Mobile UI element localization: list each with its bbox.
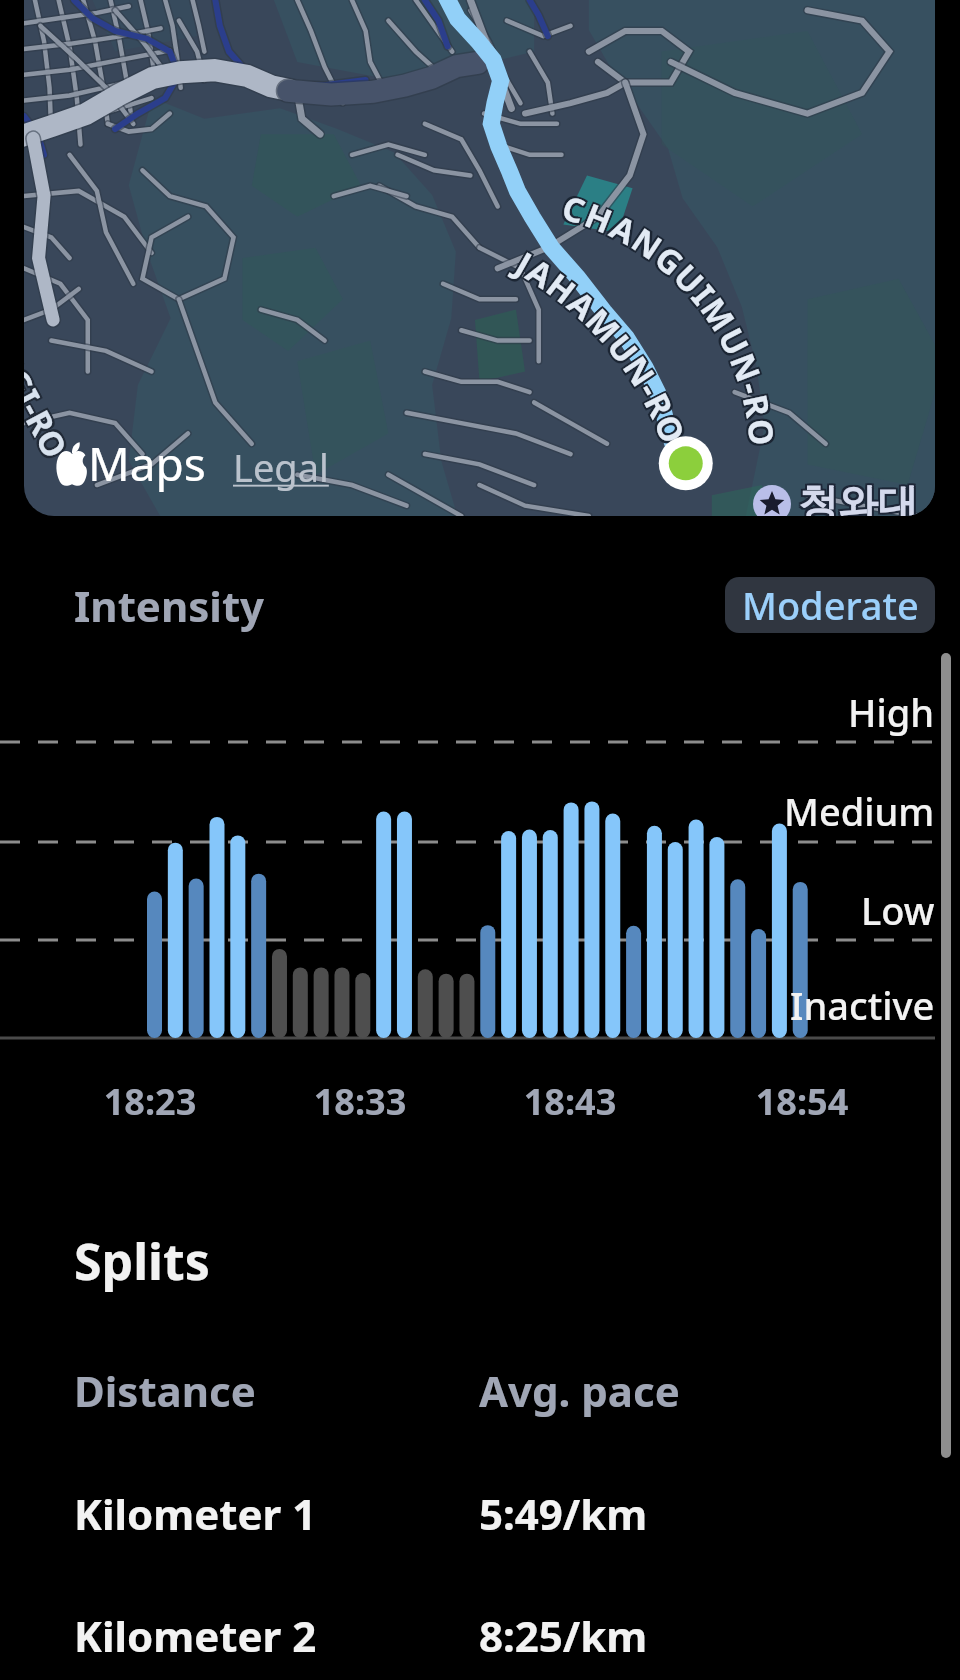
staticText: 18:54 xyxy=(732,1077,872,1126)
button[interactable]: Moderate xyxy=(725,577,935,633)
staticText: 18:33 xyxy=(290,1077,430,1126)
button[interactable]: Kilometer 1 xyxy=(0,1465,960,1565)
staticText: 5:49/km xyxy=(479,1485,648,1542)
button[interactable]: Legal xyxy=(233,441,329,493)
staticText: Low xyxy=(861,884,935,936)
staticText: Avg. pace xyxy=(479,1362,680,1419)
staticText: Kilometer 2 xyxy=(74,1607,317,1664)
staticText: 18:43 xyxy=(500,1077,640,1126)
staticText: Medium xyxy=(784,785,935,837)
staticText: Maps xyxy=(88,432,206,495)
staticText: Moderate xyxy=(742,579,919,631)
button[interactable]: Distance xyxy=(0,1342,960,1442)
staticText: Distance xyxy=(74,1362,256,1419)
staticText: Kilometer 1 xyxy=(74,1485,317,1542)
staticText: Inactive xyxy=(790,979,935,1031)
staticText: High xyxy=(848,686,935,738)
staticText: 8:25/km xyxy=(479,1607,648,1664)
staticText: Splits xyxy=(74,1227,210,1295)
staticText: Intensity xyxy=(74,577,265,634)
button[interactable]: Kilometer 2 xyxy=(0,1587,960,1680)
staticText: 18:23 xyxy=(80,1077,220,1126)
button[interactable]: Route map xyxy=(24,0,935,516)
